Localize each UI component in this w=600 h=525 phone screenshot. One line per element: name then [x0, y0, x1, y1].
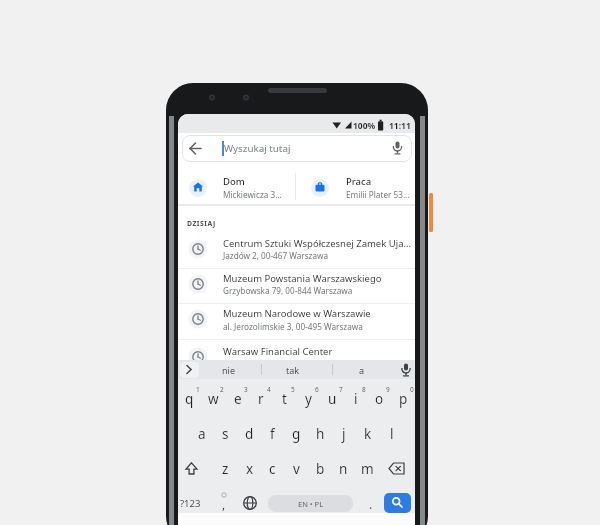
staticText: al. Jerozolimskie 3, 00-495 Warszawa — [223, 321, 363, 332]
button[interactable] — [178, 266, 415, 302]
staticText: 11:11 — [389, 120, 411, 132]
staticText: o — [375, 390, 384, 408]
button[interactable] — [182, 135, 412, 162]
staticText: b — [316, 460, 325, 478]
staticText: 0 — [410, 385, 414, 394]
button[interactable] — [184, 461, 199, 476]
staticText: Muzeum Powstania Warszawskiego — [223, 272, 413, 285]
staticText: k — [364, 425, 372, 443]
button[interactable] — [384, 493, 411, 513]
staticText: a — [359, 364, 365, 376]
staticText: 100% — [353, 120, 376, 132]
button[interactable] — [401, 363, 411, 376]
staticText: c — [269, 460, 276, 478]
staticText: DZISIAJ — [187, 219, 216, 228]
button[interactable] — [178, 167, 295, 205]
button[interactable]: EN • PL — [268, 495, 353, 512]
staticText: ?123 — [180, 497, 201, 510]
staticText: 6 — [315, 385, 319, 394]
staticText: m — [361, 460, 374, 478]
staticText: Emilii Plater 53... — [346, 189, 410, 200]
staticText: Centrum Sztuki Współczesnej Zamek Ujazdo… — [223, 237, 413, 250]
button[interactable] — [392, 141, 403, 156]
staticText: Grzybowska 79, 00-844 Warszawa — [223, 285, 353, 296]
staticText: p — [399, 390, 408, 408]
button[interactable] — [180, 362, 199, 378]
staticText: e — [234, 390, 242, 408]
staticText: . — [369, 496, 373, 512]
staticText: , — [222, 496, 226, 512]
staticText: EN • PL — [298, 499, 324, 509]
staticText: Warsaw Financial Center — [223, 345, 413, 358]
staticText: nie — [222, 364, 235, 376]
staticText: z — [222, 460, 229, 478]
staticText: d — [245, 425, 254, 443]
button[interactable] — [189, 142, 202, 155]
button[interactable] — [178, 339, 415, 375]
staticText: l — [390, 425, 394, 443]
staticText: 5 — [291, 385, 295, 394]
staticText: Mickiewicza 3... — [223, 189, 282, 200]
staticText: Jazdów 2, 00-467 Warszawa — [223, 250, 329, 261]
staticText: 9 — [386, 385, 390, 394]
staticText: h — [316, 425, 325, 443]
staticText: Wyszukaj tutaj — [224, 142, 291, 155]
staticText: Dom — [223, 175, 245, 188]
staticText: i — [354, 390, 358, 408]
staticText: 8 — [362, 385, 366, 394]
staticText: v — [293, 460, 300, 478]
staticText: y — [305, 390, 312, 408]
staticText: u — [328, 390, 337, 408]
button[interactable] — [388, 462, 406, 475]
staticText: Praca — [346, 175, 372, 188]
staticText: j — [342, 425, 346, 443]
staticText: Muzeum Narodowe w Warszawie — [223, 307, 413, 320]
button[interactable] — [178, 231, 415, 267]
staticText: f — [270, 425, 275, 443]
staticText: r — [258, 390, 264, 408]
staticText: q — [185, 390, 194, 408]
staticText: a — [198, 425, 206, 443]
staticText: n — [339, 460, 348, 478]
button[interactable] — [178, 301, 415, 337]
staticText: g — [292, 425, 301, 443]
staticText: w — [208, 390, 219, 408]
staticText: 4 — [267, 385, 271, 394]
staticText: t — [282, 390, 287, 408]
staticText: 7 — [339, 385, 343, 394]
button[interactable] — [243, 496, 257, 510]
staticText: tak — [286, 364, 300, 376]
staticText: x — [246, 460, 254, 478]
staticText: 2 — [220, 385, 224, 394]
button[interactable] — [296, 167, 415, 205]
staticText: 3 — [244, 385, 248, 394]
staticText: s — [222, 425, 229, 443]
staticText: 1 — [196, 385, 200, 394]
